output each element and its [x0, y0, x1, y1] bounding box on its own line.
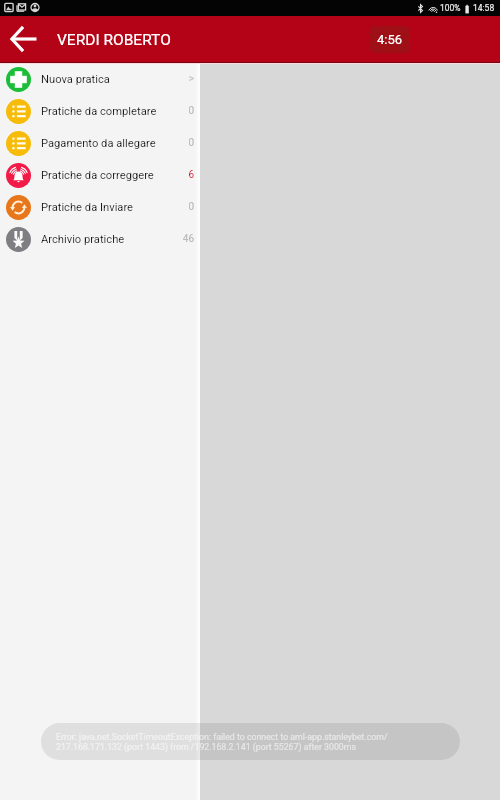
staticText: VERDI ROBERTO — [57, 31, 171, 49]
button[interactable]: Pratiche da Inviare — [0, 191, 200, 223]
staticText: Pratiche da correggere — [41, 169, 154, 182]
staticText: Nuova pratica — [41, 73, 110, 86]
staticText: Archivio pratiche — [41, 233, 125, 246]
button[interactable]: Pratiche da correggere — [0, 159, 200, 191]
staticText: 0 — [188, 201, 194, 213]
button[interactable]: Pagamento da allegare — [0, 127, 200, 159]
button[interactable]: Archivio pratiche — [0, 223, 200, 255]
staticText: 4:56 — [377, 32, 403, 47]
button[interactable]: 4:56 — [370, 26, 410, 53]
staticText: 46 — [182, 233, 194, 245]
button[interactable]: Nuova pratica — [0, 63, 200, 95]
staticText: 100% — [440, 3, 461, 13]
staticText: Error: java.net.SocketTimeoutException: … — [56, 732, 388, 752]
staticText: Pagamento da allegare — [41, 137, 156, 150]
button[interactable]: Pratiche da completare — [0, 95, 200, 127]
staticText: > — [188, 73, 194, 85]
staticText: Pratiche da Inviare — [41, 201, 134, 214]
staticText: Pratiche da completare — [41, 105, 157, 118]
staticText: 14:58 — [473, 3, 495, 13]
staticText: 6 — [188, 169, 194, 181]
staticText: 0 — [188, 105, 194, 117]
button[interactable]: Back — [0, 16, 46, 62]
staticText: 0 — [188, 137, 194, 149]
